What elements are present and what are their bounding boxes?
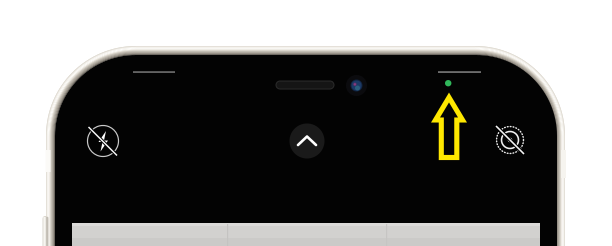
button[interactable]: Live Photo off (488, 118, 532, 162)
button[interactable]: More camera controls (285, 119, 329, 163)
button[interactable]: Flash off (81, 119, 125, 163)
